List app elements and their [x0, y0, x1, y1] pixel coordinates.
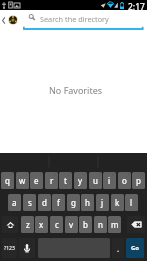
button[interactable]: Shift — [2, 216, 18, 233]
button[interactable]: u — [89, 172, 102, 189]
button[interactable]: a — [8, 194, 21, 211]
button[interactable]: f — [52, 194, 65, 211]
button[interactable]: Navigate up — [0, 10, 22, 28]
staticText: 2:17 — [128, 1, 145, 11]
staticText: a — [12, 197, 17, 208]
staticText: f — [57, 197, 60, 208]
staticText: p — [136, 175, 141, 186]
staticText: j — [101, 197, 104, 208]
button[interactable]: q — [1, 172, 14, 189]
staticText: g — [71, 197, 76, 208]
button[interactable]: t — [59, 172, 72, 189]
button[interactable]: z — [21, 216, 34, 233]
button[interactable]: x — [35, 216, 48, 233]
button[interactable]: Voice input — [19, 238, 35, 258]
button[interactable]: v — [65, 216, 78, 233]
button[interactable]: e — [30, 172, 43, 189]
button[interactable]: d — [38, 194, 51, 211]
staticText: w — [19, 175, 26, 186]
staticText: l — [130, 197, 133, 208]
staticText: c — [55, 219, 59, 230]
staticText: Go — [131, 244, 140, 252]
staticText: Search the directory — [40, 14, 109, 24]
button[interactable]: w — [16, 172, 29, 189]
button[interactable]: g — [67, 194, 80, 211]
button[interactable]: Go — [126, 238, 144, 258]
staticText: k — [115, 197, 120, 208]
staticText: x — [39, 219, 44, 230]
staticText: . — [117, 243, 120, 254]
button[interactable]: l — [125, 194, 138, 211]
staticText: o — [122, 175, 127, 186]
button[interactable]: s — [23, 194, 36, 211]
staticText: b — [83, 219, 88, 230]
button[interactable]: Delete — [127, 216, 145, 233]
staticText: t — [64, 175, 67, 186]
button[interactable]: i — [103, 172, 116, 189]
button[interactable]: r — [45, 172, 58, 189]
button[interactable]: o — [118, 172, 131, 189]
staticText: i — [108, 175, 111, 186]
staticText: y — [78, 175, 83, 186]
staticText: h — [85, 197, 90, 208]
staticText: ?123 — [4, 245, 15, 252]
button[interactable]: c — [50, 216, 63, 233]
staticText: s — [28, 197, 32, 208]
staticText: q — [5, 175, 10, 186]
staticText: No Favorites — [49, 84, 103, 96]
staticText: r — [50, 175, 54, 186]
button[interactable]: j — [96, 194, 109, 211]
button[interactable]: . — [112, 238, 124, 258]
button[interactable]: h — [81, 194, 94, 211]
staticText: m — [111, 219, 119, 230]
button[interactable]: y — [74, 172, 87, 189]
button[interactable]: b — [79, 216, 92, 233]
staticText: u — [93, 175, 98, 186]
button[interactable]: n — [94, 216, 107, 233]
button[interactable]: m — [108, 216, 121, 233]
staticText: d — [42, 197, 47, 208]
button[interactable]: k — [111, 194, 124, 211]
staticText: v — [69, 219, 74, 230]
staticText: z — [26, 219, 30, 230]
button[interactable]: p — [132, 172, 145, 189]
staticText: n — [98, 219, 103, 230]
button[interactable]: Search the directory — [22, 10, 147, 28]
button[interactable]: ?123 — [2, 238, 17, 258]
staticText: e — [34, 175, 39, 186]
